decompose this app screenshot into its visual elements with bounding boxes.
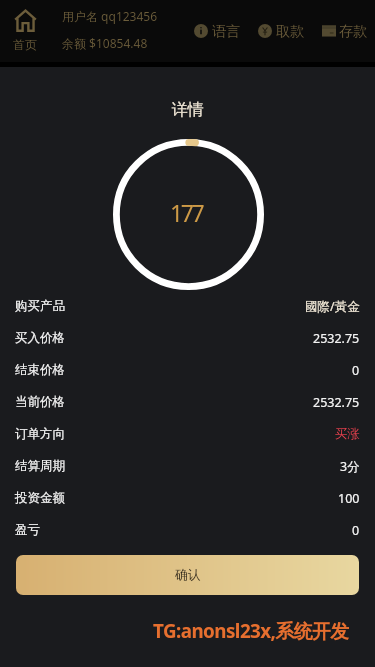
staticText: 买涨 (335, 426, 360, 442)
staticText: 投资金额 (15, 490, 65, 506)
button[interactable]: 确认 (16, 555, 359, 595)
staticText: 用户名 qq123456 (62, 8, 158, 24)
staticText: 177 (170, 197, 203, 228)
button[interactable]: 买入价格 (15, 322, 360, 354)
staticText: 结束价格 (15, 362, 65, 378)
staticText: 盈亏 (15, 522, 40, 538)
staticText: TG:anonsl23x,系统开发 (153, 618, 349, 644)
button[interactable]: 投资金额 (15, 482, 360, 514)
button[interactable]: 订单方向 (15, 418, 360, 450)
staticText: 语言 (212, 22, 241, 40)
staticText: 首页 (13, 37, 37, 52)
staticText: 订单方向 (15, 426, 65, 442)
button[interactable]: 购买产品 (15, 290, 360, 322)
button[interactable]: 结束价格 (15, 354, 360, 386)
staticText: 购买产品 (15, 298, 65, 314)
staticText: 2532.75 (313, 330, 360, 347)
staticText: 100 (338, 490, 360, 507)
staticText: 國際/黃金 (305, 298, 360, 315)
button[interactable]: 语言 (194, 22, 241, 40)
staticText: 确认 (175, 567, 201, 583)
button[interactable]: 盈亏 (15, 514, 360, 546)
button[interactable]: 存款 (322, 22, 368, 40)
button[interactable]: 首页 (13, 9, 37, 52)
staticText: 余额 $10854.48 (62, 35, 148, 51)
staticText: 存款 (339, 22, 368, 40)
staticText: 0 (352, 522, 360, 539)
staticText: 0 (352, 362, 360, 379)
button[interactable]: 结算周期 (15, 450, 360, 482)
button[interactable]: 取款 (258, 22, 305, 40)
staticText: 3分 (340, 458, 360, 475)
staticText: 2532.75 (313, 394, 360, 411)
button[interactable]: 当前价格 (15, 386, 360, 418)
staticText: 买入价格 (15, 330, 65, 346)
staticText: 结算周期 (15, 458, 65, 474)
staticText: 详情 (0, 100, 375, 120)
staticText: 当前价格 (15, 394, 65, 410)
staticText: 取款 (276, 22, 305, 40)
